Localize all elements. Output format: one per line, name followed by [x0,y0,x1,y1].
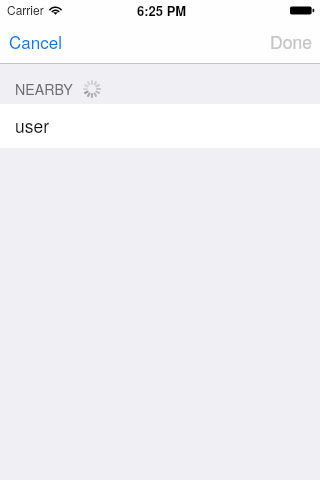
other: Loading [83,80,101,98]
button[interactable]: user [0,104,320,148]
staticText: user [15,113,50,138]
button[interactable]: Done [261,20,320,64]
staticText: Carrier [7,1,44,18]
staticText: NEARBY [15,79,73,99]
other: Wi-Fi signal [50,6,61,15]
other: Battery full [290,5,315,16]
button[interactable]: Cancel [0,20,71,64]
staticText: Done [270,29,313,51]
staticText: 6:25 PM [137,1,187,20]
staticText: Cancel [9,29,62,51]
